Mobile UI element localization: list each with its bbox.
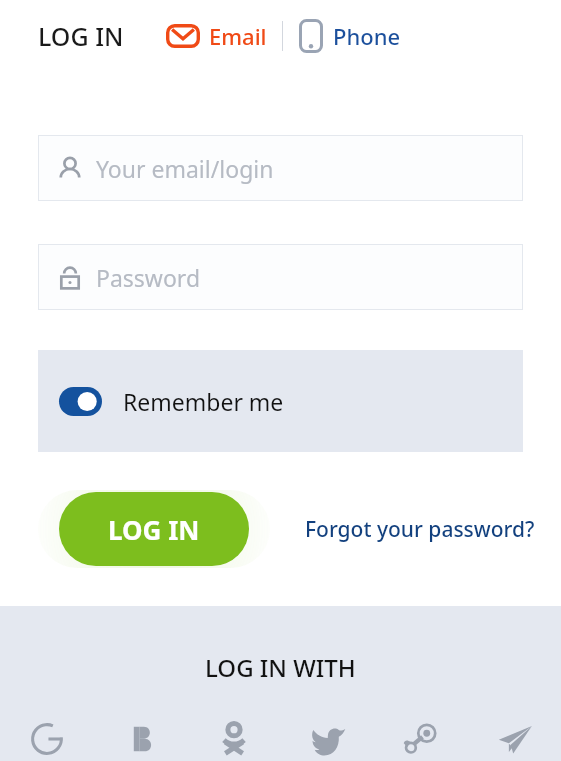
- staticText: LOG IN: [108, 512, 200, 547]
- staticText: LOG IN WITH: [205, 651, 356, 684]
- button[interactable]: Google: [0, 716, 93, 761]
- staticText: Forgot your password?: [305, 515, 535, 544]
- button[interactable]: Steam: [374, 716, 467, 761]
- staticText: LOG IN: [38, 19, 124, 53]
- button[interactable]: Phone: [296, 13, 403, 59]
- staticText: Your email/login: [96, 153, 274, 184]
- button[interactable]: Twitter: [281, 716, 374, 761]
- staticText: Password: [96, 262, 201, 293]
- button[interactable]: Odnoklassniki: [187, 716, 280, 761]
- button[interactable]: Your email/login: [38, 135, 523, 201]
- staticText: Remember me: [123, 386, 284, 417]
- button[interactable]: Email: [164, 15, 269, 57]
- staticText: Email: [209, 21, 267, 51]
- button[interactable]: Telegram: [468, 716, 561, 761]
- staticText: Phone: [333, 21, 401, 51]
- button[interactable]: Forgot your password?: [301, 511, 539, 548]
- button[interactable]: Remember me: [38, 350, 523, 452]
- button[interactable]: Password: [38, 244, 523, 310]
- button[interactable]: VK: [94, 716, 187, 761]
- button[interactable]: LOG IN: [59, 492, 249, 566]
